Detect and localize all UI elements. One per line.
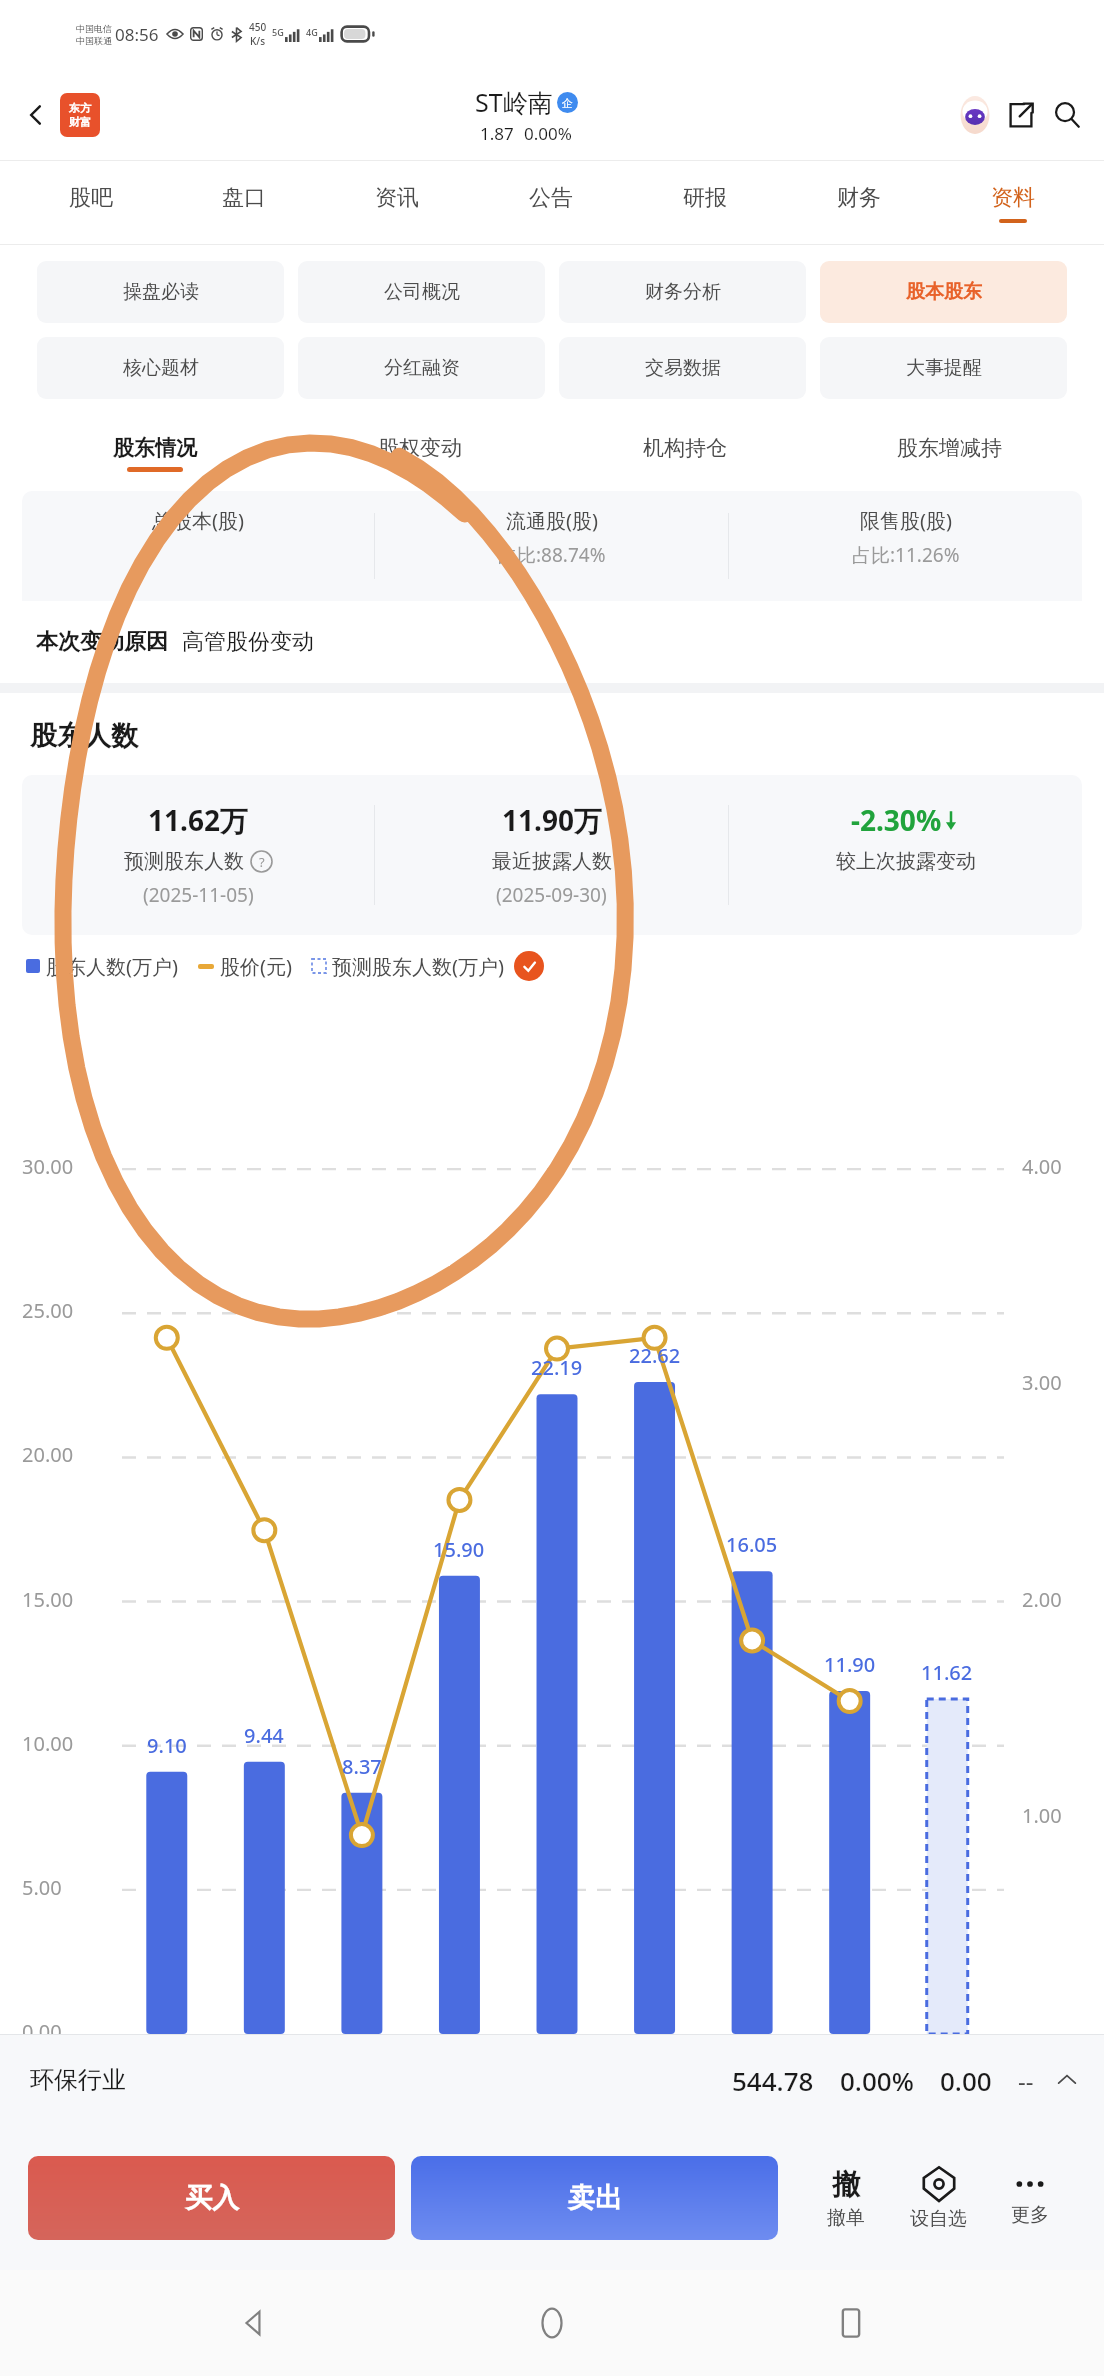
staticText: 更多 bbox=[1011, 2203, 1049, 2227]
button[interactable]: Search bbox=[1044, 92, 1090, 138]
staticText: 0.00 bbox=[940, 2063, 992, 2098]
staticText: 股东增减持 bbox=[897, 435, 1002, 461]
staticText: 卖出 bbox=[568, 2181, 622, 2215]
button[interactable]: 交易数据 bbox=[559, 337, 806, 399]
staticText: 机构持仓 bbox=[643, 435, 727, 461]
staticText: 15.00 bbox=[22, 1586, 74, 1613]
staticText: 占比:11.26% bbox=[852, 542, 960, 568]
button[interactable]: Share bbox=[998, 92, 1044, 138]
button[interactable]: 撤 bbox=[800, 2126, 892, 2270]
staticText: 公司概况 bbox=[384, 280, 460, 304]
staticText: 总股本(股) bbox=[152, 507, 244, 534]
staticText: 股权变动 bbox=[378, 435, 462, 461]
staticText: 11.90 bbox=[824, 1651, 876, 1678]
button[interactable]: Expand bbox=[1050, 2063, 1084, 2097]
button[interactable]: Recents bbox=[806, 2278, 896, 2368]
staticText: 9.44 bbox=[244, 1722, 284, 1749]
button[interactable]: 资料 bbox=[936, 161, 1090, 245]
staticText: 企 bbox=[562, 96, 573, 110]
button[interactable]: 核心题材 bbox=[37, 337, 284, 399]
staticText: 买入 bbox=[185, 2181, 239, 2215]
staticText: (2025-11-05) bbox=[143, 882, 254, 908]
staticText: 限售股(股) bbox=[860, 507, 952, 534]
staticText: 1.87 bbox=[480, 122, 514, 145]
button[interactable]: 卖出 bbox=[411, 2156, 778, 2240]
staticText: 30.00 bbox=[22, 1153, 74, 1180]
staticText: 撤 bbox=[832, 2167, 860, 2202]
staticText: ST岭南 bbox=[475, 85, 553, 119]
staticText: 撤单 bbox=[827, 2206, 865, 2230]
staticText: 设自选 bbox=[910, 2207, 967, 2231]
button[interactable]: Help bbox=[250, 850, 273, 873]
staticText: 5G bbox=[272, 26, 284, 38]
staticText: 11.62万 bbox=[148, 801, 248, 839]
button[interactable]: 资讯 bbox=[320, 161, 474, 245]
button[interactable]: 设自选 bbox=[892, 2126, 984, 2270]
staticText: 5.00 bbox=[22, 1874, 62, 1901]
button[interactable]: 股东增减持 bbox=[817, 415, 1082, 491]
staticText: 25.00 bbox=[22, 1297, 74, 1324]
button[interactable]: 股东情况 bbox=[22, 415, 287, 491]
staticText: 财富 bbox=[69, 115, 91, 129]
button[interactable]: 操盘必读 bbox=[37, 261, 284, 323]
staticText: -- bbox=[1018, 2064, 1034, 2097]
staticText: 研报 bbox=[683, 184, 727, 212]
button[interactable]: Back bbox=[14, 93, 58, 137]
button[interactable]: AI assistant bbox=[952, 92, 998, 138]
staticText: ? bbox=[259, 853, 265, 871]
button[interactable]: 盘口 bbox=[167, 161, 320, 245]
button[interactable]: 本次变动原因 bbox=[22, 601, 1082, 683]
staticText: 10.00 bbox=[22, 1730, 74, 1757]
button[interactable]: 财务 bbox=[782, 161, 936, 245]
staticText: 股东人数 bbox=[30, 719, 138, 753]
staticText: 环保行业 bbox=[30, 2065, 126, 2095]
button[interactable]: 股本股东 bbox=[820, 261, 1067, 323]
staticText: 占比:88.74% bbox=[498, 542, 606, 568]
staticText: 2.00 bbox=[1022, 1586, 1062, 1613]
button[interactable]: 公司概况 bbox=[298, 261, 545, 323]
staticText: 较上次披露变动 bbox=[836, 849, 976, 874]
button[interactable]: Toggle forecast bbox=[514, 951, 544, 981]
staticText: 4.00 bbox=[1022, 1153, 1062, 1180]
button[interactable]: 大事提醒 bbox=[820, 337, 1067, 399]
staticText: 9.10 bbox=[147, 1732, 187, 1759]
staticText: 股本股东 bbox=[906, 280, 982, 304]
button[interactable]: 买入 bbox=[28, 2156, 395, 2240]
staticText: 股东情况 bbox=[113, 435, 197, 461]
staticText: 股东人数(万户) bbox=[46, 953, 178, 980]
staticText: 16.05 bbox=[726, 1531, 778, 1558]
button[interactable]: 公告 bbox=[474, 161, 628, 245]
staticText: 11.90万 bbox=[502, 801, 602, 839]
staticText: 0.00% bbox=[524, 122, 572, 145]
button[interactable]: 股权变动 bbox=[287, 415, 552, 491]
staticText: 公告 bbox=[529, 184, 573, 212]
staticText: 0.00% bbox=[840, 2063, 914, 2098]
staticText: 中国联通 bbox=[76, 35, 112, 46]
staticText: 分红融资 bbox=[384, 356, 460, 380]
button[interactable]: 研报 bbox=[628, 161, 782, 245]
button[interactable]: 更多 bbox=[984, 2126, 1076, 2270]
button[interactable]: Home bbox=[507, 2278, 597, 2368]
staticText: 预测股东人数(万户) bbox=[332, 953, 504, 980]
staticText: 11.62 bbox=[921, 1659, 973, 1686]
staticText: 资料 bbox=[991, 184, 1035, 212]
button[interactable]: 机构持仓 bbox=[552, 415, 817, 491]
staticText: 财务分析 bbox=[645, 280, 721, 304]
button[interactable]: 股吧 bbox=[14, 161, 167, 245]
button[interactable]: 财务分析 bbox=[559, 261, 806, 323]
staticText: 20.00 bbox=[22, 1441, 74, 1468]
staticText: 最近披露人数 bbox=[492, 849, 612, 874]
staticText: 流通股(股) bbox=[506, 507, 598, 534]
staticText: 22.19 bbox=[531, 1354, 583, 1381]
button[interactable]: 东方财富 bbox=[60, 93, 100, 137]
staticText: 大事提醒 bbox=[906, 356, 982, 380]
button[interactable]: 分红融资 bbox=[298, 337, 545, 399]
button[interactable]: Back bbox=[209, 2278, 299, 2368]
staticText: 450 bbox=[249, 20, 267, 34]
staticText: 预测股东人数 bbox=[124, 849, 244, 874]
staticText: (2025-09-30) bbox=[496, 882, 607, 908]
staticText: 盘口 bbox=[222, 184, 266, 212]
staticText: 544.78 bbox=[732, 2063, 814, 2098]
staticText: -2.30% bbox=[851, 801, 942, 839]
staticText: 15.90 bbox=[433, 1536, 485, 1563]
